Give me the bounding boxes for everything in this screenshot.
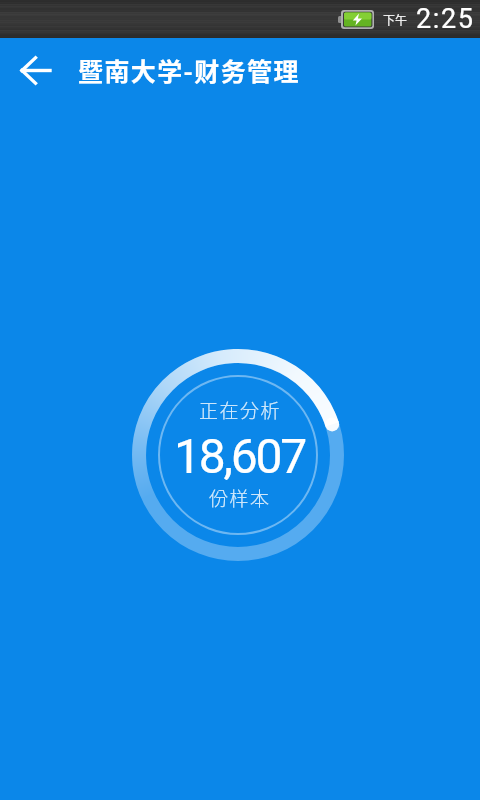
staticText: 暨南大学-财务管理 (78, 52, 300, 88)
staticText: 下午 (383, 11, 408, 28)
staticText: 份样本 (209, 484, 271, 510)
staticText: 正在分析 (199, 396, 282, 422)
button[interactable]: 暨南大学-财务管理 (78, 52, 300, 88)
staticText: 18,607 (174, 428, 306, 484)
staticText: 2:25 (416, 3, 475, 35)
button[interactable] (0, 38, 72, 102)
